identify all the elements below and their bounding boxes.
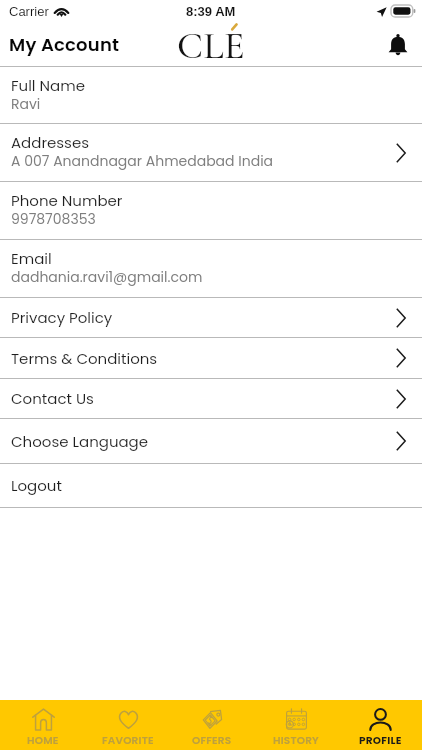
button[interactable]: Full Name: [0, 67, 422, 123]
staticText: Privacy Policy: [11, 307, 113, 328]
button[interactable]: FAVORITE: [85, 700, 170, 750]
button[interactable]: HISTORY: [254, 700, 338, 750]
button[interactable]: Notifications: [382, 29, 414, 61]
staticText: Contact Us: [11, 388, 94, 409]
staticText: HISTORY: [273, 733, 319, 748]
staticText: Carrier: [9, 4, 49, 19]
button[interactable]: Terms & Conditions: [0, 338, 422, 378]
staticText: OFFERS: [192, 733, 232, 748]
button[interactable]: Addresses: [0, 124, 422, 181]
staticText: FAVORITE: [102, 733, 154, 748]
button[interactable]: Phone Number: [0, 182, 422, 239]
button[interactable]: HOME: [0, 700, 85, 750]
staticText: Phone Number: [11, 190, 123, 211]
button[interactable]: Choose Language: [0, 419, 422, 463]
button[interactable]: Contact Us: [0, 379, 422, 418]
staticText: Addresses: [11, 132, 90, 153]
staticText: Email: [11, 248, 52, 269]
staticText: Choose Language: [11, 431, 149, 452]
staticText: Logout: [11, 475, 62, 496]
staticText: 8:39 AM: [186, 4, 236, 19]
button[interactable]: Email: [0, 240, 422, 297]
staticText: PROFILE: [359, 733, 402, 748]
staticText: Full Name: [11, 75, 85, 96]
button[interactable]: Privacy Policy: [0, 298, 422, 337]
button[interactable]: Logout: [0, 464, 422, 507]
staticText: HOME: [27, 733, 59, 748]
staticText: A 007 Anandnagar Ahmedabad India: [11, 151, 274, 171]
staticText: dadhania.ravi1@gmail.com: [11, 267, 203, 287]
staticText: Ravi: [11, 94, 41, 114]
staticText: My Account: [9, 32, 120, 57]
staticText: 9978708353: [11, 209, 96, 229]
staticText: CLE: [177, 23, 245, 63]
button[interactable]: OFFERS: [170, 700, 254, 750]
staticText: Terms & Conditions: [11, 348, 158, 369]
button[interactable]: PROFILE: [338, 700, 422, 750]
